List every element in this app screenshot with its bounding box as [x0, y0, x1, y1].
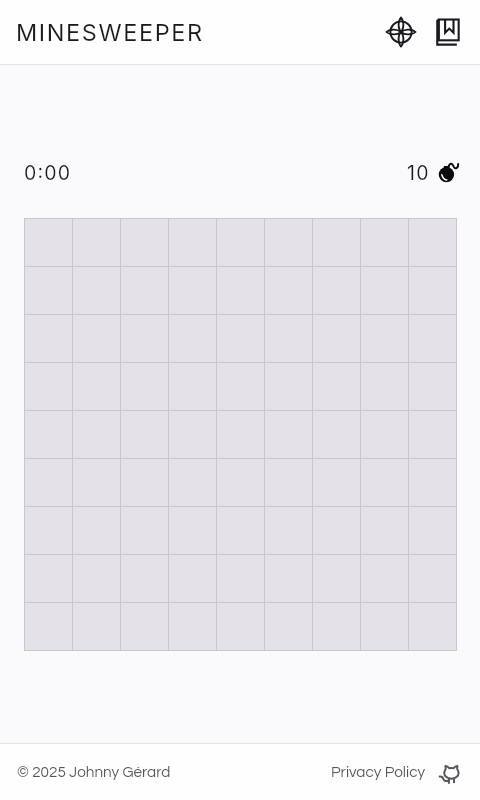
staticText: 10	[407, 161, 430, 185]
staticText: Privacy Policy	[331, 764, 426, 780]
button[interactable]: Rules	[426, 10, 470, 54]
button[interactable]: GitHub	[435, 757, 465, 787]
button[interactable]: New game	[379, 10, 423, 54]
button[interactable]: Privacy Policy	[329, 758, 428, 786]
staticText: 0:00	[24, 161, 72, 185]
staticText: MINESWEEPER	[16, 18, 204, 46]
staticText: © 2025 Johnny Gérard	[17, 764, 171, 780]
